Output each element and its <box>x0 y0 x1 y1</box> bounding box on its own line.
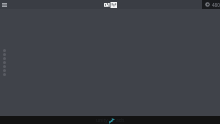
button[interactable]: Shortcut <box>3 73 6 76</box>
button[interactable]: Advertisement <box>0 116 220 124</box>
button[interactable]: Shortcut <box>3 49 6 52</box>
button[interactable]: Coins <box>202 0 220 9</box>
button[interactable]: Home <box>104 2 117 8</box>
staticText: 480 <box>212 2 220 8</box>
button[interactable]: Shortcut <box>3 61 6 64</box>
button[interactable]: Shortcut <box>3 65 6 68</box>
button[interactable]: Menu <box>1 1 8 8</box>
button[interactable]: Shortcut <box>3 57 6 60</box>
button[interactable]: Shortcut <box>3 53 6 56</box>
button[interactable]: Shortcut <box>3 69 6 72</box>
staticText: unity <box>96 117 108 124</box>
staticText: ads <box>116 117 125 124</box>
